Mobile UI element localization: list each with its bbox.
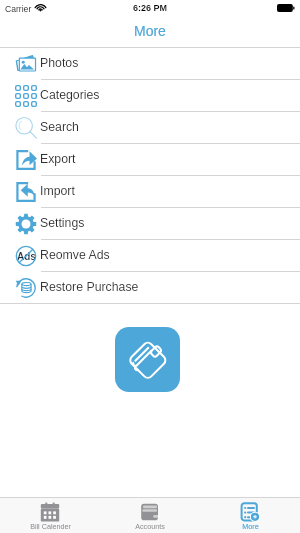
button[interactable]: Accounts xyxy=(100,498,200,530)
staticText: Export xyxy=(40,152,76,166)
staticText: Search xyxy=(40,120,79,134)
button[interactable]: Ads xyxy=(0,240,300,271)
button[interactable]: Bill Calender xyxy=(0,498,100,530)
staticText: Carrier xyxy=(5,4,32,14)
button[interactable]: App icon xyxy=(115,327,180,392)
button[interactable]: Export xyxy=(0,144,300,175)
staticText: Bill Calender xyxy=(30,522,71,530)
staticText: Reomve Ads xyxy=(40,248,110,262)
staticText: More xyxy=(242,522,259,530)
staticText: Categories xyxy=(40,88,100,102)
button[interactable]: Search xyxy=(0,112,300,143)
button[interactable]: Import xyxy=(0,176,300,207)
staticText: Restore Purchase xyxy=(40,280,139,294)
staticText: Ads xyxy=(17,251,36,262)
button[interactable]: Settings xyxy=(0,208,300,239)
staticText: Accounts xyxy=(135,522,165,530)
button[interactable]: More xyxy=(200,498,300,530)
button[interactable]: Restore Purchase xyxy=(0,272,300,303)
button[interactable]: Photos xyxy=(0,48,300,79)
staticText: Settings xyxy=(40,216,85,230)
button[interactable]: Categories xyxy=(0,80,300,111)
staticText: More xyxy=(134,23,166,39)
staticText: 6:26 PM xyxy=(133,3,168,13)
staticText: Photos xyxy=(40,56,79,70)
staticText: Import xyxy=(40,184,75,198)
